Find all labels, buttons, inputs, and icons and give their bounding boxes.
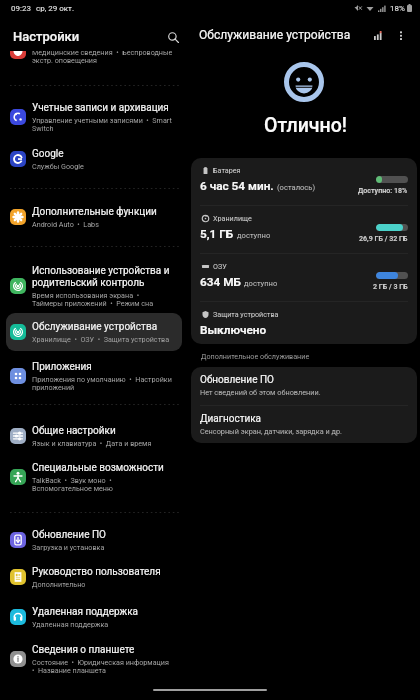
staticText: Удаленная поддержка	[32, 606, 139, 618]
button[interactable]: Общие настройки	[6, 417, 182, 455]
staticText: Сенсорный экран, датчики, зарядка и др.	[200, 427, 342, 436]
staticText: TalkBack • Звук моно •	[32, 476, 112, 484]
staticText: 634 МБ	[200, 275, 241, 289]
staticText: Дополнительные функции	[32, 206, 157, 218]
staticText: Руководство пользователя	[32, 566, 161, 578]
staticText: Медицинские сведения • Беспроводные	[32, 51, 173, 56]
staticText: доступно	[237, 231, 271, 240]
staticText: 6 час 54 мин.	[200, 179, 274, 193]
staticText: экстр. оповещения	[32, 56, 97, 64]
button[interactable]: Медицинские сведения • Беспроводные	[0, 51, 190, 73]
button[interactable]: Обновление ПО	[6, 521, 182, 559]
staticText: Приложения по умолчанию • Настройки	[32, 375, 172, 383]
staticText: Доступно: 18%	[358, 186, 408, 194]
staticText: Состояние • Юридическая информация	[32, 658, 169, 666]
staticText: Общие настройки	[32, 425, 116, 437]
button[interactable]: Статистика использования	[368, 25, 388, 45]
staticText: Специальные возможности	[32, 462, 164, 474]
staticText: Google	[32, 148, 64, 160]
button[interactable]: Сведения о планшете	[6, 635, 182, 682]
button[interactable]: ОЗУ	[191, 254, 417, 301]
staticText: 5,1 ГБ	[200, 227, 234, 241]
staticText: Обновление ПО	[200, 374, 274, 386]
staticText: Загрузка и установка	[32, 543, 105, 551]
staticText: Настройки	[13, 29, 80, 44]
staticText: Службы Google	[32, 162, 84, 170]
staticText: Выключено	[200, 323, 267, 337]
button[interactable]: Дополнительные функции	[6, 198, 182, 236]
staticText: ср, 29 окт.	[36, 4, 75, 13]
staticText: Таймеры приложений • Режим сна	[32, 299, 154, 307]
button[interactable]: Руководство пользователя	[6, 558, 182, 596]
staticText: Управление учетными записями • Smart	[32, 116, 172, 124]
button[interactable]: Поиск	[162, 26, 185, 49]
staticText: Время использования экрана •	[32, 291, 140, 299]
staticText: Дополнительно	[32, 580, 86, 588]
staticText: Хранилище • ОЗУ • Защита устройства	[32, 335, 170, 343]
staticText: Диагностика	[200, 413, 262, 425]
staticText: Дополнительное обслуживание	[201, 352, 310, 360]
staticText: (осталось)	[277, 183, 316, 192]
button[interactable]: Удаленная поддержка	[6, 598, 182, 636]
staticText: Язык и клавиатура • Дата и время	[32, 439, 152, 447]
button[interactable]: Специальные возможности	[6, 453, 182, 500]
button[interactable]: Защита устройства	[191, 302, 417, 344]
button[interactable]: Обслуживание устройства	[6, 313, 182, 351]
button[interactable]: Google	[6, 140, 182, 178]
staticText: Батарея	[213, 166, 241, 174]
staticText: 26,9 ГБ / 32 ГБ	[359, 234, 408, 242]
staticText: родительский контроль	[32, 277, 145, 289]
staticText: Сведения о планшете	[32, 644, 135, 656]
staticText: Приложения	[32, 361, 92, 373]
staticText: ОЗУ	[213, 262, 227, 270]
staticText: Обслуживание устройства	[199, 28, 351, 42]
staticText: Хранилище	[213, 214, 252, 222]
button[interactable]: Приложения	[6, 352, 182, 399]
button[interactable]: Дополнительные параметры	[391, 25, 411, 45]
staticText: 18%	[390, 4, 405, 13]
staticText: 09:23	[11, 4, 31, 13]
button[interactable]: Диагностика	[191, 406, 417, 443]
staticText: Удаленная поддержка	[32, 620, 109, 628]
button[interactable]: Хранилище	[191, 206, 417, 253]
staticText: 2 ГБ / 3 ГБ	[373, 282, 408, 290]
staticText: Switch	[32, 124, 54, 132]
staticText: Обновление ПО	[32, 529, 106, 541]
staticText: Android Auto • Labs	[32, 220, 99, 228]
staticText: • Название планшета	[32, 666, 106, 674]
staticText: Использование устройства и	[32, 265, 170, 277]
staticText: приложений	[32, 383, 75, 391]
staticText: Отлично!	[264, 114, 347, 137]
staticText: Вспомогательное меню	[32, 484, 113, 492]
staticText: Учетные записи и архивация	[32, 102, 169, 114]
button[interactable]: Обновление ПО	[191, 367, 417, 405]
staticText: Нет сведений об этом обновлении.	[200, 388, 321, 397]
staticText: доступно	[244, 279, 278, 288]
button[interactable]: Батарея	[191, 158, 417, 205]
button[interactable]: Учетные записи и архивация	[6, 93, 182, 140]
button[interactable]: Использование устройства и	[6, 256, 182, 315]
staticText: Защита устройства	[213, 310, 279, 318]
staticText: Обслуживание устройства	[32, 321, 158, 333]
